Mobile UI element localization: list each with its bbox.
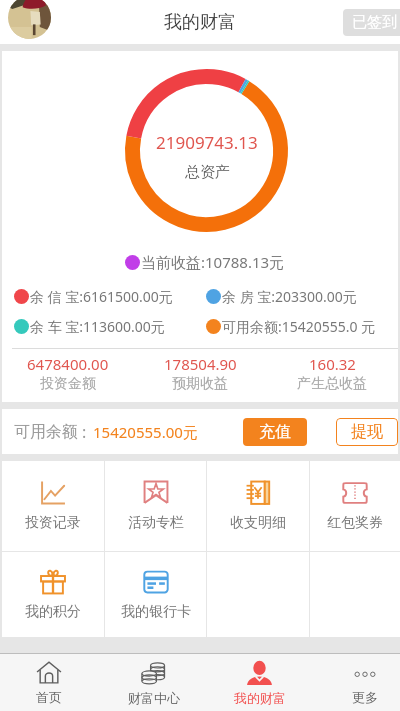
staticText: 21909743.13 bbox=[156, 131, 258, 154]
button[interactable]: 充值 bbox=[243, 418, 307, 446]
staticText: 可用余额 bbox=[14, 422, 78, 442]
staticText: 余 房 宝:203300.00元 bbox=[222, 287, 357, 306]
staticText: 余 车 宝:113600.00元 bbox=[30, 317, 165, 336]
staticText: 投资金额 bbox=[40, 375, 96, 393]
staticText: 我的积分 bbox=[25, 603, 81, 621]
button[interactable]: 更多 bbox=[312, 654, 400, 711]
staticText: 总资产 bbox=[185, 163, 230, 182]
staticText: 收支明细 bbox=[230, 514, 286, 532]
staticText: 财富中心 bbox=[128, 690, 180, 706]
staticText: 红包奖券 bbox=[327, 514, 383, 532]
staticText: 余 信 宝:6161500.00元 bbox=[30, 287, 173, 306]
button[interactable]: 红包奖券 bbox=[310, 461, 400, 551]
staticText: 首页 bbox=[36, 689, 62, 705]
staticText: 充值 bbox=[259, 422, 291, 442]
button[interactable]: 我的财富 bbox=[207, 654, 312, 711]
staticText: 我的财富 bbox=[234, 690, 286, 706]
staticText: 178504.90 bbox=[164, 354, 237, 374]
button[interactable]: 活动专栏 bbox=[105, 461, 206, 551]
button[interactable]: 首页 bbox=[0, 654, 101, 711]
button[interactable]: 财富中心 bbox=[101, 654, 206, 711]
staticText: 我的银行卡 bbox=[121, 603, 191, 621]
button[interactable]: 提现 bbox=[336, 418, 398, 446]
staticText: 提现 bbox=[351, 422, 383, 442]
staticText: 6478400.00 bbox=[27, 354, 109, 374]
button[interactable]: 收支明细 bbox=[207, 461, 309, 551]
button[interactable]: 我的银行卡 bbox=[105, 552, 206, 637]
staticText: 更多 bbox=[352, 689, 378, 705]
staticText: : bbox=[82, 421, 87, 443]
button[interactable]: 投资记录 bbox=[2, 461, 104, 551]
staticText: 产生总收益 bbox=[297, 375, 367, 393]
staticText: 已签到 bbox=[352, 13, 397, 32]
button[interactable]: 已签到 bbox=[343, 9, 400, 36]
button[interactable]: 我的积分 bbox=[2, 552, 104, 637]
staticText: 当前收益:10788.13元 bbox=[141, 252, 285, 272]
staticText: 我的财富 bbox=[164, 11, 236, 34]
staticText: 投资记录 bbox=[25, 514, 81, 532]
staticText: 活动专栏 bbox=[128, 514, 184, 532]
staticText: 160.32 bbox=[309, 354, 356, 374]
staticText: 15420555.00元 bbox=[93, 422, 198, 442]
staticText: 可用余额:15420555.0 元 bbox=[222, 317, 376, 336]
button[interactable]: Profile avatar bbox=[8, 0, 51, 39]
staticText: 预期收益 bbox=[172, 375, 228, 393]
